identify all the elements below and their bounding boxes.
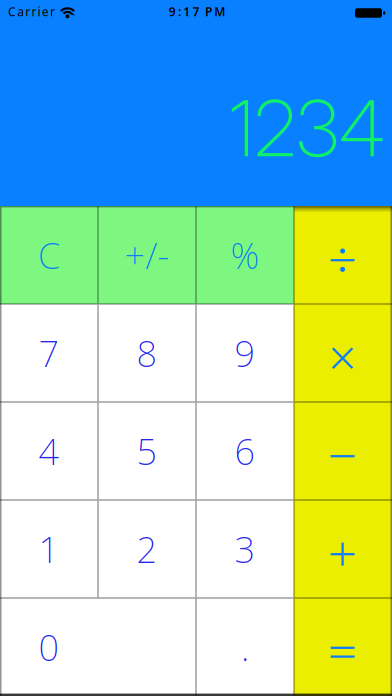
staticText: i	[38, 3, 41, 19]
button[interactable]: 8	[98, 304, 196, 402]
button[interactable]: 4	[0, 402, 98, 500]
staticText: 9	[169, 3, 176, 19]
staticText: a	[17, 3, 24, 19]
staticText: :	[178, 3, 181, 19]
button[interactable]: Equals	[294, 598, 392, 696]
button[interactable]: 1	[0, 500, 98, 598]
button[interactable]: 5	[98, 402, 196, 500]
button[interactable]: 6	[196, 402, 294, 500]
staticText: 7	[38, 329, 59, 377]
staticText: 2	[136, 525, 157, 573]
staticText: 1	[38, 525, 59, 573]
button[interactable]: C	[0, 206, 98, 304]
staticText: .	[241, 623, 249, 671]
button[interactable]: Divide	[294, 206, 392, 304]
button[interactable]: Add	[294, 500, 392, 598]
staticText: M	[214, 3, 225, 19]
staticText: 0	[38, 623, 59, 671]
button[interactable]: .	[196, 598, 294, 696]
staticText: 5	[136, 427, 157, 475]
staticText: r	[31, 3, 36, 19]
button[interactable]: 7	[0, 304, 98, 402]
staticText: 6	[234, 427, 255, 475]
staticText: 7	[192, 3, 199, 19]
button[interactable]: Subtract	[294, 402, 392, 500]
staticText: +/-	[124, 231, 169, 279]
button[interactable]: %	[196, 206, 294, 304]
staticText: 3	[234, 525, 255, 573]
staticText: C	[38, 231, 60, 279]
staticText: r	[50, 3, 55, 19]
staticText: 4	[38, 427, 59, 475]
button[interactable]: +/-	[98, 206, 196, 304]
staticText: r	[25, 3, 30, 19]
staticText: 1	[183, 3, 190, 19]
staticText: C	[8, 3, 16, 19]
staticText: 1234	[229, 81, 385, 175]
staticText: %	[230, 231, 259, 279]
staticText: e	[42, 3, 49, 19]
button[interactable]: Multiply	[294, 304, 392, 402]
button[interactable]: 2	[98, 500, 196, 598]
button[interactable]: 9	[196, 304, 294, 402]
staticText: 9	[234, 329, 255, 377]
staticText: 8	[136, 329, 157, 377]
button[interactable]: 3	[196, 500, 294, 598]
staticText: P	[205, 3, 212, 19]
button[interactable]: 0	[0, 598, 196, 696]
